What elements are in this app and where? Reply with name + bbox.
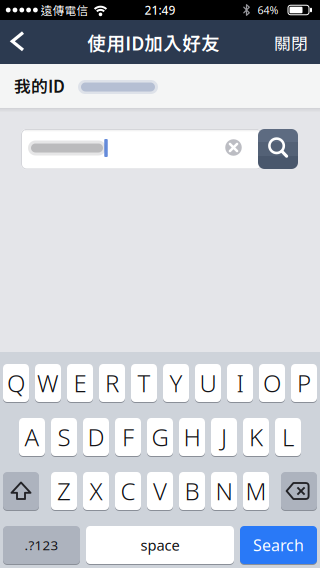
button[interactable]: Search [258, 129, 298, 169]
staticText: X [89, 475, 102, 507]
button[interactable]: I [227, 364, 253, 402]
button[interactable]: S [51, 418, 77, 456]
staticText: 我的ID [14, 73, 65, 97]
button[interactable]: Y [163, 364, 189, 402]
button[interactable]: X [83, 472, 109, 510]
button[interactable]: Q [3, 364, 29, 402]
button[interactable]: Z [51, 472, 77, 510]
button[interactable]: .?123 [3, 526, 80, 564]
staticText: J [221, 421, 227, 453]
staticText: 遠傳電信 [40, 1, 88, 18]
staticText: .?123 [24, 536, 58, 554]
staticText: M [245, 475, 266, 507]
staticText: P [297, 367, 311, 399]
button[interactable]: J [211, 418, 237, 456]
staticText: V [153, 475, 167, 507]
staticText: 關閉 [274, 30, 308, 55]
button[interactable]: T [131, 364, 157, 402]
staticText: H [183, 421, 200, 453]
staticText: F [122, 421, 134, 453]
button[interactable]: B [179, 472, 205, 510]
button[interactable]: E [67, 364, 93, 402]
button[interactable]: ID text field [21, 129, 262, 169]
staticText: K [249, 421, 263, 453]
staticText: A [24, 421, 39, 453]
button[interactable]: Search [240, 526, 317, 564]
button[interactable]: Back [0, 20, 34, 64]
button[interactable]: 關閉 [266, 20, 316, 64]
button[interactable]: W [35, 364, 61, 402]
button[interactable]: H [179, 418, 205, 456]
staticText: T [137, 367, 150, 399]
staticText: I [236, 367, 243, 399]
staticText: N [215, 475, 232, 507]
button[interactable]: Shift [3, 472, 39, 510]
button[interactable]: Clear text [225, 139, 242, 156]
staticText: U [199, 367, 216, 399]
staticText: S [57, 421, 70, 453]
button[interactable]: U [195, 364, 221, 402]
staticText: E [73, 367, 86, 399]
button[interactable]: M [243, 472, 269, 510]
button[interactable]: L [275, 418, 301, 456]
staticText: Q [7, 367, 25, 399]
staticText: W [37, 367, 59, 399]
button[interactable]: Delete [281, 472, 317, 510]
button[interactable]: A [19, 418, 45, 456]
staticText: B [184, 475, 199, 507]
button[interactable]: N [211, 472, 237, 510]
staticText: Search [253, 534, 304, 556]
button[interactable]: K [243, 418, 269, 456]
button[interactable]: V [147, 472, 173, 510]
button[interactable]: P [291, 364, 317, 402]
staticText: Y [169, 367, 182, 399]
staticText: 使用ID加入好友 [87, 29, 220, 56]
staticText: L [282, 421, 294, 453]
staticText: O [263, 367, 281, 399]
button[interactable]: space [86, 526, 234, 564]
button[interactable]: R [99, 364, 125, 402]
staticText: 21:49 [144, 2, 175, 18]
button[interactable]: G [147, 418, 173, 456]
staticText: space [140, 535, 179, 555]
staticText: Z [57, 475, 71, 507]
staticText: G [151, 421, 168, 453]
staticText: D [87, 421, 104, 453]
staticText: R [105, 367, 119, 399]
button[interactable]: C [115, 472, 141, 510]
button[interactable]: O [259, 364, 285, 402]
staticText: C [120, 475, 135, 507]
button[interactable]: D [83, 418, 109, 456]
staticText: 64% [257, 3, 278, 17]
button[interactable]: F [115, 418, 141, 456]
